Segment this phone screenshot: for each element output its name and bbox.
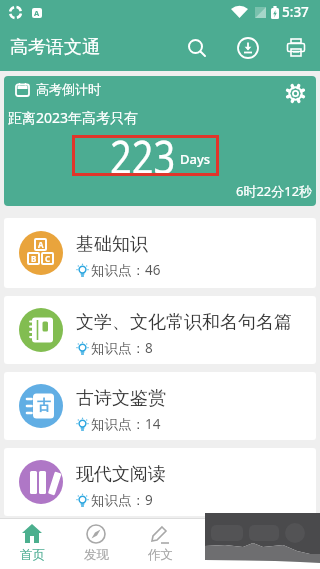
- staticText: 古: [37, 397, 51, 415]
- button[interactable]: 首页: [0, 519, 64, 569]
- button[interactable]: 发现: [64, 519, 128, 569]
- staticText: 知识点：9: [91, 491, 153, 509]
- button[interactable]: [281, 79, 309, 107]
- staticText: 基础知识: [76, 233, 148, 256]
- staticText: 223: [110, 125, 176, 174]
- staticText: 距离2023年高考只有: [8, 108, 139, 127]
- staticText: B: [31, 253, 37, 264]
- staticText: 发现: [84, 547, 109, 563]
- staticText: 知识点：8: [91, 339, 153, 357]
- staticText: A: [34, 8, 40, 18]
- button[interactable]: [192, 519, 256, 569]
- button[interactable]: 文学、文化常识和名句名篇: [4, 296, 316, 364]
- staticText: 6时22分12秒: [236, 182, 313, 200]
- staticText: 现代文阅读: [76, 463, 166, 486]
- staticText: 文学、文化常识和名句名篇: [76, 311, 292, 334]
- button[interactable]: A: [4, 218, 316, 288]
- staticText: Days: [180, 150, 211, 168]
- staticText: C: [45, 253, 51, 264]
- staticText: 知识点：46: [91, 261, 161, 279]
- button[interactable]: [232, 32, 264, 64]
- button[interactable]: [256, 519, 320, 569]
- button[interactable]: 223: [72, 135, 219, 176]
- button[interactable]: [280, 32, 312, 64]
- staticText: 古诗文鉴赏: [76, 387, 166, 410]
- button[interactable]: 现代文阅读: [4, 448, 316, 516]
- staticText: 高考倒计时: [36, 81, 101, 97]
- staticText: 5:37: [282, 3, 309, 21]
- staticText: A: [38, 239, 44, 250]
- button[interactable]: 古: [4, 372, 316, 440]
- button[interactable]: 作文: [128, 519, 192, 569]
- staticText: 知识点：14: [91, 415, 161, 433]
- staticText: 作文: [148, 547, 173, 563]
- button[interactable]: [181, 32, 213, 64]
- staticText: 首页: [20, 547, 45, 563]
- staticText: 高考语文通: [10, 36, 100, 59]
